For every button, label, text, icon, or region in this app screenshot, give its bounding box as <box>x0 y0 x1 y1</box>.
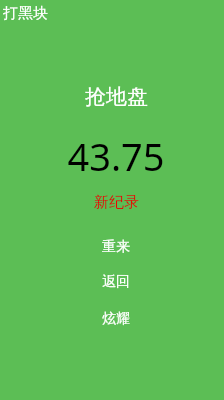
staticText: 抢地盘 <box>85 84 148 110</box>
staticText: 新纪录 <box>94 193 139 212</box>
staticText: 返回 <box>102 273 130 291</box>
button[interactable]: 炫耀 <box>78 308 154 330</box>
staticText: 炫耀 <box>102 310 130 328</box>
staticText: 43.75 <box>67 130 165 182</box>
staticText: 打黑块 <box>3 4 48 23</box>
button[interactable]: 重来 <box>78 236 154 258</box>
button[interactable]: 返回 <box>78 271 154 293</box>
staticText: 重来 <box>102 238 130 256</box>
